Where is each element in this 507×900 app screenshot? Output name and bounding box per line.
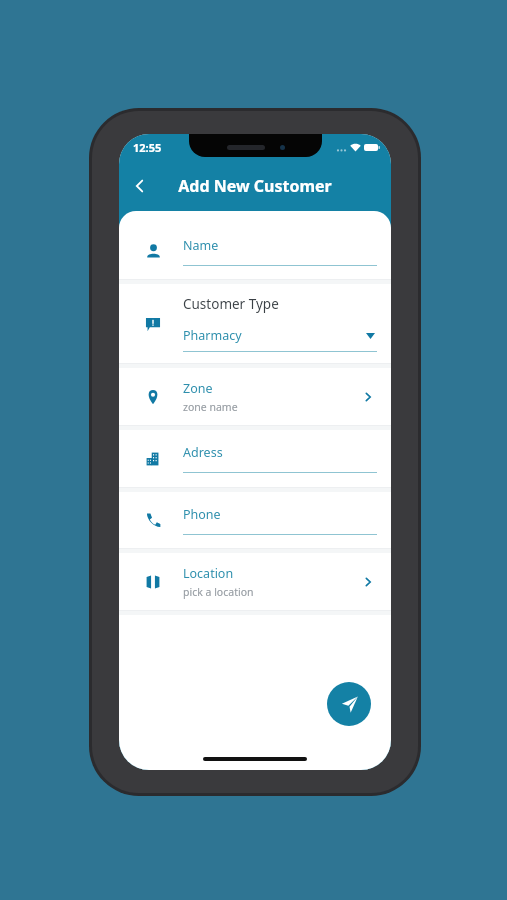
staticText: Name (183, 237, 219, 254)
staticText: Pharmacy (183, 327, 242, 344)
button[interactable]: Location (119, 553, 391, 610)
staticText: Customer Type (183, 295, 279, 313)
button[interactable]: Save customer (327, 682, 371, 726)
staticText: Zone (183, 380, 213, 397)
staticText: pick a location (183, 585, 254, 599)
button[interactable]: Zone (119, 368, 391, 425)
staticText: Adress (183, 444, 223, 461)
staticText: zone name (183, 400, 238, 414)
staticText: Add New Customer (178, 175, 332, 197)
button[interactable]: Back (119, 165, 161, 207)
staticText: Phone (183, 506, 221, 523)
staticText: 12:55 (133, 140, 162, 155)
staticText: Location (183, 565, 234, 582)
